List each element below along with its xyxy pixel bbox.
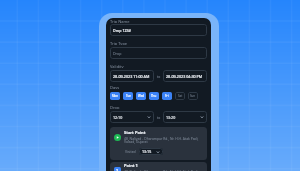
staticText: Trip Type: [110, 41, 128, 45]
staticText: Sun: [190, 94, 196, 98]
button[interactable]: Sun: [188, 92, 198, 100]
staticText: to: [157, 74, 161, 79]
button[interactable]: Start point: [110, 127, 207, 160]
staticText: Wed: [138, 94, 145, 98]
button[interactable]: 12:10: [110, 111, 154, 123]
button[interactable]: Mon: [110, 92, 120, 100]
staticText: Tue: [126, 94, 131, 98]
button[interactable]: 13:20: [163, 111, 207, 123]
staticText: 1: [116, 168, 119, 171]
button[interactable]: Drop: [110, 47, 207, 59]
staticText: Visited: [125, 149, 136, 154]
staticText: Thu: [151, 94, 157, 98]
button[interactable]: Wed: [136, 92, 146, 100]
button[interactable]: Thu: [149, 92, 159, 100]
staticText: 28-09-2023 11:00 AM: [113, 74, 150, 79]
staticText: Days: [110, 85, 120, 89]
staticText: 13:15: [142, 149, 152, 154]
staticText: Fri: [165, 94, 169, 98]
staticText: 28-09-2023 04:30 PM: [166, 74, 203, 79]
button[interactable]: 28-09-2023 11:00 AM: [110, 70, 154, 82]
staticText: to: [157, 115, 161, 120]
staticText: Drop: [113, 51, 122, 56]
staticText: 13:20: [166, 115, 176, 120]
button[interactable]: Tue: [123, 92, 133, 100]
other: Start point: [114, 134, 121, 141]
staticText: Sat: [178, 94, 183, 98]
button[interactable]: Sat: [175, 92, 185, 100]
button[interactable]: 28-09-2023 04:30 PM: [163, 70, 207, 82]
button[interactable]: Fri: [162, 92, 172, 100]
staticText: Start Point: [124, 130, 146, 135]
button[interactable]: 1: [110, 162, 207, 171]
staticText: Trip Name: [110, 19, 130, 23]
staticText: Drop: [110, 105, 120, 109]
button[interactable]: Drop 123#: [110, 24, 207, 36]
staticText: 48, Naliyad - Dharampur Rd., Nr. H.H. At…: [124, 136, 199, 144]
staticText: 12:10: [113, 115, 123, 120]
staticText: Mon: [112, 94, 119, 98]
staticText: 48, Naliyad - Dharampur Rd., Nr. H.H. At…: [124, 169, 199, 171]
staticText: Drop 123#: [113, 28, 131, 33]
staticText: Validity: [110, 64, 124, 68]
staticText: Point 1: [124, 163, 138, 168]
button[interactable]: 13:15: [139, 148, 163, 155]
